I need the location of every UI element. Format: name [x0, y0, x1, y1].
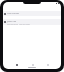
button[interactable]: Messages [15, 63, 18, 66]
staticText: Alex Morgan [7, 12, 20, 15]
staticText: Jamie Lee [7, 20, 17, 23]
staticText: Inbox [5, 9, 12, 12]
button[interactable]: Search [31, 63, 34, 66]
staticText: Sounds good, see you then [7, 23, 30, 25]
button[interactable]: Profile [46, 63, 49, 66]
button[interactable]: Alex Morgan [3, 11, 61, 16]
button[interactable]: Jamie Lee [3, 19, 61, 25]
